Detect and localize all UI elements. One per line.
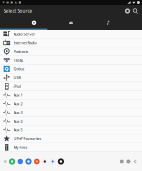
button[interactable]: Aux 5 xyxy=(0,126,142,134)
button[interactable]: Now Playing xyxy=(15,17,52,29)
button[interactable]: TIDAL xyxy=(0,56,142,65)
button[interactable]: Queue xyxy=(89,17,126,29)
staticText: Podcasts xyxy=(14,49,29,54)
staticText: Select Source xyxy=(3,8,32,14)
staticText: Aux 2 xyxy=(14,101,23,106)
staticText: My Files xyxy=(14,145,28,150)
button[interactable]: Aux 4 xyxy=(0,117,142,126)
button[interactable]: USB xyxy=(0,73,142,82)
staticText: UPnP Favourites xyxy=(14,136,42,141)
staticText: iPod xyxy=(14,84,21,89)
staticText: Aux 4 xyxy=(14,119,23,124)
staticText: USB xyxy=(14,75,21,80)
button[interactable]: Aux 3 xyxy=(0,108,142,117)
staticText: Aux 5 xyxy=(14,127,23,132)
button[interactable]: Qobuz xyxy=(0,65,142,73)
staticText: Aux 1 xyxy=(14,92,23,98)
button[interactable]: Podcasts xyxy=(0,47,142,56)
button[interactable]: iPod xyxy=(0,82,142,91)
button[interactable]: My Files xyxy=(0,143,142,152)
staticText: Qobuz xyxy=(14,66,25,71)
button[interactable]: Home xyxy=(126,159,131,164)
button[interactable]: Aux 1 xyxy=(0,91,142,100)
button[interactable]: Settings xyxy=(123,5,131,17)
staticText: Aux 3 xyxy=(14,110,23,115)
button[interactable]: Library xyxy=(52,17,89,29)
staticText: Internet Radio xyxy=(14,40,37,45)
staticText: TIDAL xyxy=(14,58,24,63)
button[interactable]: Recents xyxy=(120,159,124,163)
button[interactable]: Internet Radio xyxy=(0,39,142,47)
button[interactable]: Back xyxy=(133,159,137,164)
button[interactable]: Audio Server xyxy=(0,30,142,39)
staticText: Audio Server xyxy=(14,31,36,37)
button[interactable]: Aux 2 xyxy=(0,100,142,108)
button[interactable]: Search xyxy=(131,5,139,17)
button[interactable]: UPnP Favourites xyxy=(0,134,142,143)
